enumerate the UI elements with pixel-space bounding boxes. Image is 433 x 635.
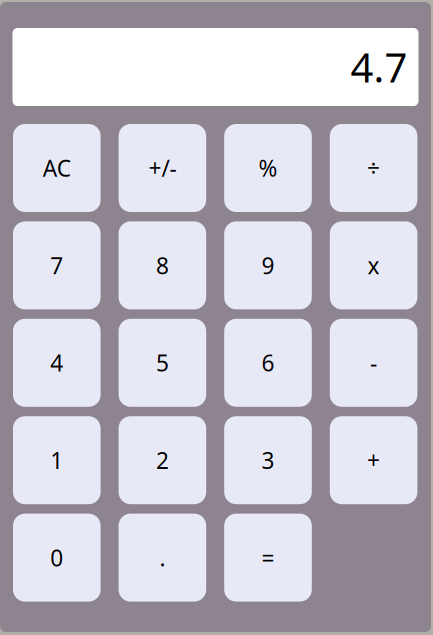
staticText: 2: [156, 445, 169, 475]
button[interactable]: 7: [13, 221, 101, 309]
button[interactable]: ÷: [330, 124, 417, 212]
staticText: ÷: [367, 153, 380, 183]
button[interactable]: .: [119, 514, 206, 602]
staticText: .: [159, 542, 165, 573]
staticText: 1: [50, 445, 63, 475]
button[interactable]: 2: [119, 416, 206, 504]
button[interactable]: x: [330, 221, 417, 309]
staticText: 3: [261, 445, 274, 475]
staticText: 8: [156, 250, 169, 280]
staticText: +/-: [148, 153, 176, 183]
button[interactable]: 5: [119, 319, 206, 407]
button[interactable]: 8: [119, 221, 206, 309]
button[interactable]: 4: [13, 319, 101, 407]
button[interactable]: AC: [13, 124, 101, 212]
button[interactable]: +: [330, 416, 417, 504]
button[interactable]: -: [330, 319, 417, 407]
staticText: 4: [50, 348, 63, 378]
button[interactable]: =: [224, 514, 312, 602]
button[interactable]: +/-: [119, 124, 206, 212]
staticText: x: [368, 250, 380, 280]
button[interactable]: 6: [224, 319, 312, 407]
staticText: 7: [50, 250, 63, 280]
staticText: AC: [43, 153, 71, 183]
staticText: 6: [261, 348, 274, 378]
staticText: =: [261, 542, 274, 573]
staticText: 0: [50, 542, 63, 573]
button[interactable]: 0: [13, 514, 101, 602]
button[interactable]: 9: [224, 221, 312, 309]
button[interactable]: %: [224, 124, 312, 212]
staticText: 4.7: [350, 40, 407, 93]
staticText: +: [367, 445, 380, 475]
button[interactable]: 1: [13, 416, 101, 504]
staticText: 9: [261, 250, 274, 280]
staticText: 5: [156, 348, 169, 378]
button[interactable]: 3: [224, 416, 312, 504]
staticText: %: [258, 153, 277, 183]
staticText: -: [370, 348, 377, 378]
